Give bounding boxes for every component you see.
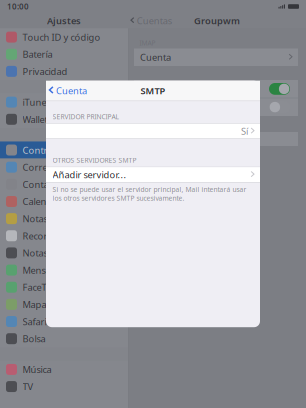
staticText: FaceTime [22,281,62,293]
button[interactable]: Cuentas [128,13,175,28]
staticText: SMTP [140,84,165,97]
staticText: Mensajes [22,264,61,276]
staticText: Notas [22,212,47,225]
staticText: Añadir servidor... [52,168,126,181]
button[interactable]: Cuenta [46,81,92,101]
staticText: iTunes Store y App Store [22,96,127,108]
staticText: Cuentas [137,15,172,27]
button[interactable]: Sí [46,124,260,138]
staticText: Contraseñas y cuentas [22,144,118,156]
staticText: Ajustes [47,15,81,27]
staticText: Cuenta [140,51,171,63]
staticText: Groupwm [194,15,240,27]
staticText: Safari [22,315,46,328]
staticText: SERVIDOR PRINCIPAL [52,112,118,121]
staticText: Sí [241,125,248,137]
staticText: Bolsa [22,332,45,345]
staticText: Correo [22,161,53,173]
staticText: Mapas [22,298,50,311]
staticText: Cuenta [56,84,87,97]
staticText: Calendario [22,195,69,208]
staticText: TV [22,380,33,393]
staticText: Batería [22,48,52,60]
staticText: Notas de voz [22,247,77,259]
staticText: Privacidad [22,65,67,78]
staticText: Touch ID y código [22,31,100,43]
staticText: Si no se puede usar el servidor principa… [52,185,246,203]
staticText: Wallet y Apple Pay [22,113,99,125]
staticText: Música [22,363,51,376]
staticText: 10:00 [7,1,29,12]
staticText: IMAP [139,39,155,47]
staticText: Recordatorios [22,230,83,242]
staticText: Contactos [22,178,65,190]
button[interactable]: Añadir servidor... [46,167,260,182]
staticText: OTROS SERVIDORES SMTP [52,156,136,164]
